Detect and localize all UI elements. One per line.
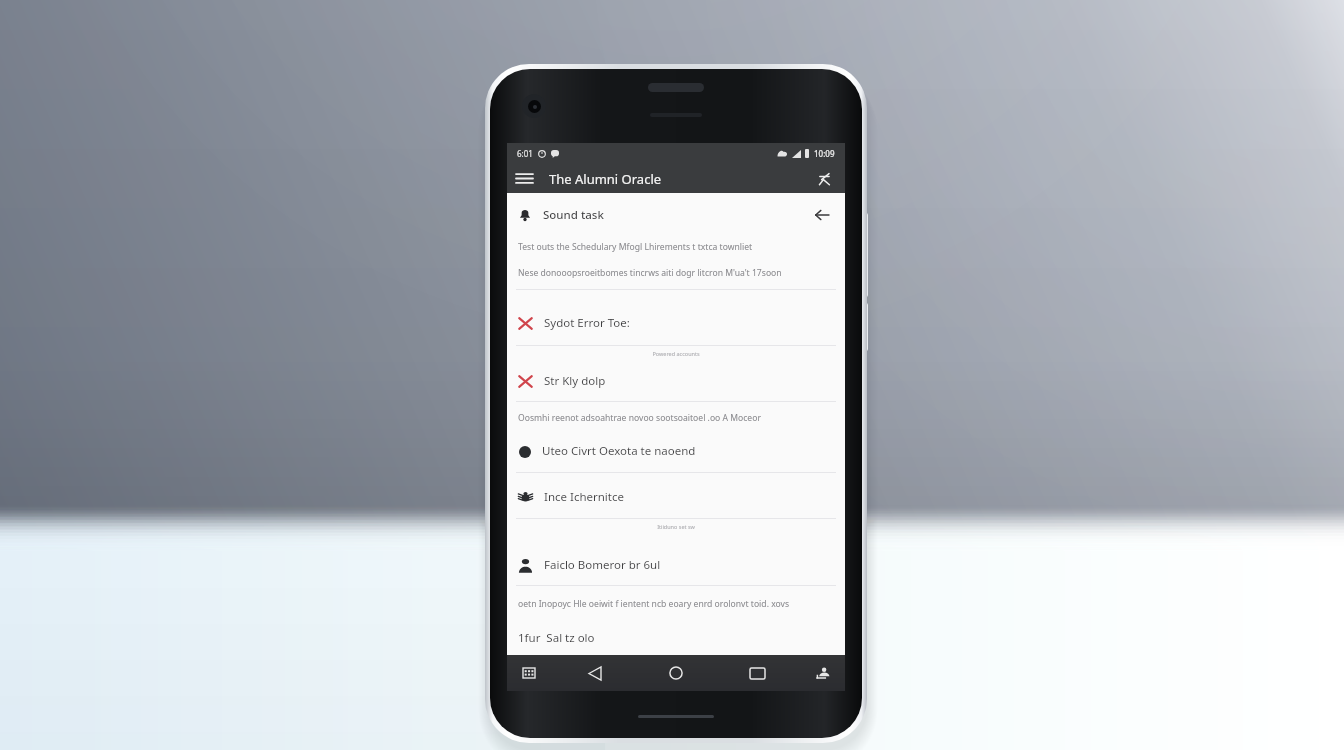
staticText: The Alumni Oracle <box>549 170 662 188</box>
button[interactable]: Uteo Civrt Oexota te naoend <box>507 433 845 469</box>
button[interactable]: Ince Ichernitce <box>507 479 845 515</box>
staticText: Test outs the Schedulary Mfogl Lhirement… <box>518 241 753 253</box>
staticText: Nese donooopsroeitbomes tincrws aiti dog… <box>518 267 782 279</box>
staticText: oetn Inopoyc Hle oeiwit f ientent ncb eo… <box>518 598 790 610</box>
staticText: Itiiduno set sw <box>657 523 695 530</box>
staticText: 6:01 <box>517 148 533 159</box>
button[interactable]: Share <box>809 164 839 193</box>
button[interactable]: Sydot Error Toe: <box>507 305 845 341</box>
button[interactable]: Open navigation menu <box>507 164 541 193</box>
button[interactable]: Home <box>662 659 690 687</box>
staticText: Ince Ichernitce <box>544 489 624 505</box>
button[interactable]: Switch user <box>809 659 837 687</box>
staticText: Oosmhi reenot adsoahtrae novoo sootsoait… <box>518 412 761 424</box>
staticText: Str Kly dolp <box>544 373 606 389</box>
staticText: Powered accounts <box>652 350 700 357</box>
staticText: 1fur Sal tz olo <box>518 630 595 646</box>
button[interactable]: Switch keyboard <box>515 659 543 687</box>
staticText: Sydot Error Toe: <box>544 315 630 331</box>
button[interactable]: Recent apps <box>743 659 771 687</box>
staticText: Uteo Civrt Oexota te naoend <box>542 443 696 459</box>
button[interactable]: Back <box>581 659 609 687</box>
button[interactable]: Str Kly dolp <box>507 363 845 399</box>
staticText: 10:09 <box>814 148 835 159</box>
staticText: Sound task <box>543 207 604 223</box>
button[interactable]: Sound task <box>507 193 845 236</box>
button[interactable]: Faiclo Bomeror br 6ul <box>507 547 845 583</box>
button[interactable]: Back <box>810 203 834 227</box>
staticText: Faiclo Bomeror br 6ul <box>544 557 661 573</box>
